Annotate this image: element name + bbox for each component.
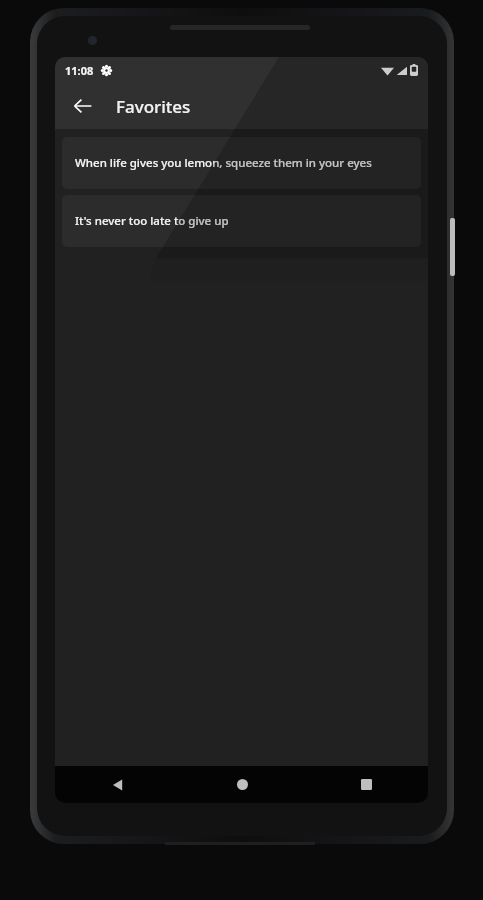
- staticText: Favorites: [116, 95, 191, 118]
- button[interactable]: It's never too late to give up: [62, 195, 421, 247]
- button[interactable]: Home: [180, 766, 304, 803]
- button[interactable]: Recent apps: [304, 766, 428, 803]
- staticText: 11:08: [65, 63, 94, 78]
- button[interactable]: Back: [63, 86, 103, 126]
- staticText: When life gives you lemon, squeeze them …: [75, 155, 372, 171]
- button[interactable]: When life gives you lemon, squeeze them …: [62, 137, 421, 189]
- button[interactable]: Back: [55, 766, 180, 803]
- staticText: It's never too late to give up: [75, 213, 229, 229]
